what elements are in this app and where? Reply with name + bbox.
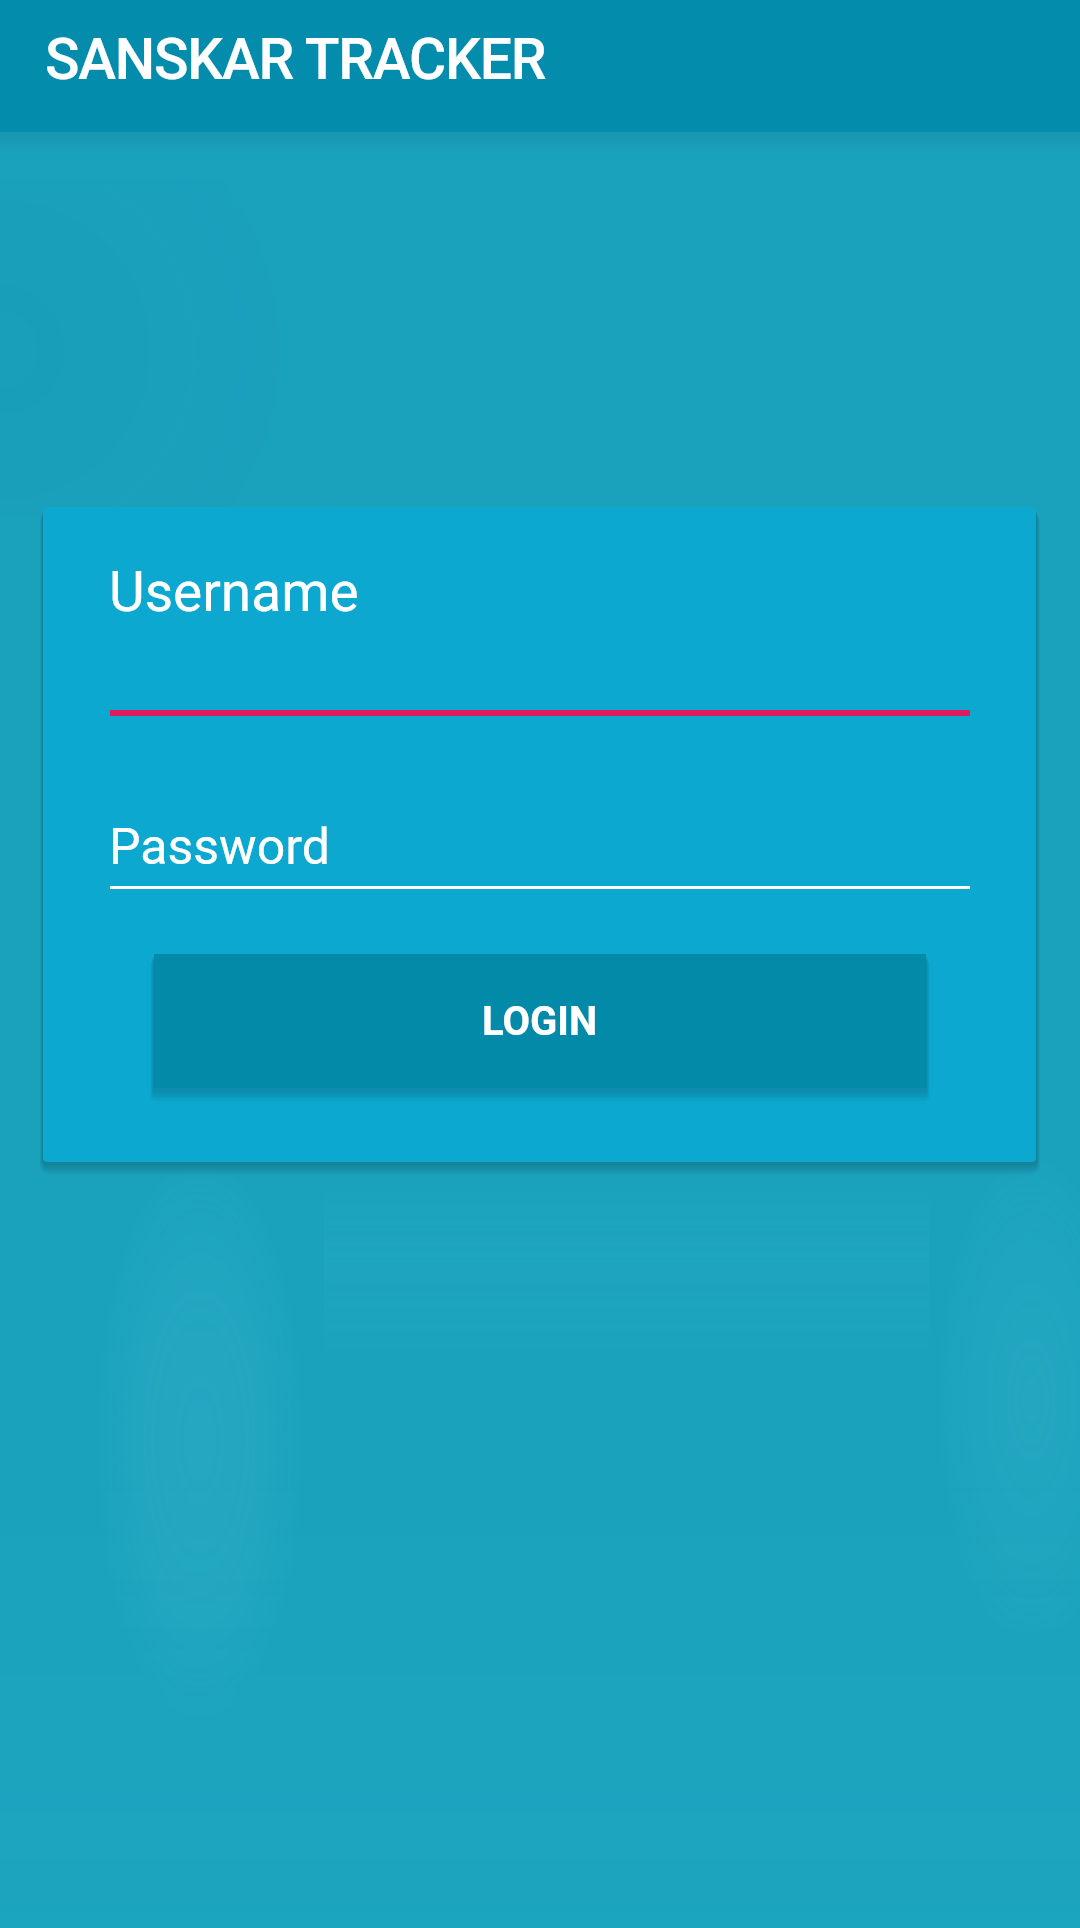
staticText: Password xyxy=(109,818,330,877)
staticText: Username xyxy=(109,560,359,624)
staticText: LOGIN xyxy=(482,998,598,1045)
button[interactable]: Password xyxy=(110,787,970,889)
staticText: SANSKAR TRACKER xyxy=(45,26,546,93)
button[interactable]: LOGIN xyxy=(154,954,926,1088)
button[interactable]: Username xyxy=(110,537,970,716)
